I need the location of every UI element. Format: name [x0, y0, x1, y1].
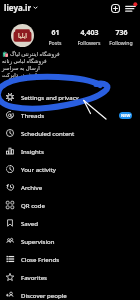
staticText: Settings and privacy	[21, 93, 79, 101]
staticText: Close Friends	[21, 255, 60, 263]
button[interactable]: QR code	[0, 196, 140, 214]
button[interactable]: 736	[104, 28, 138, 46]
staticText: Discover people	[21, 291, 67, 299]
button[interactable]: 4,403	[72, 28, 106, 46]
button[interactable]: Discover people	[0, 286, 140, 300]
staticText: Saved	[21, 219, 39, 227]
staticText: Favorites	[21, 273, 48, 281]
button[interactable]: Archive	[0, 178, 140, 196]
button[interactable]: Your activity	[0, 160, 140, 178]
staticText: Posts	[48, 39, 62, 46]
staticText: QR code	[21, 201, 45, 209]
button[interactable]: New post	[108, 1, 122, 15]
button[interactable]: Close Friends	[0, 250, 140, 268]
staticText: Insights	[21, 147, 44, 155]
staticText: Archive	[21, 183, 43, 191]
staticText: Scheduled content	[21, 129, 75, 137]
button[interactable]: Threads	[0, 106, 140, 124]
staticText: سفارش در دایرکت	[2, 71, 45, 78]
staticText: Followers	[77, 39, 101, 46]
button[interactable]: Supervision	[0, 232, 140, 250]
staticText: 🛍 فروشگاه اینترنتی لیاگ	[2, 50, 60, 57]
button[interactable]: Settings and privacy	[0, 88, 140, 106]
staticText: 4,403	[80, 28, 99, 38]
staticText: ارسال به سراسر	[2, 64, 40, 71]
button[interactable]: Insights	[0, 142, 140, 160]
button[interactable]: 61	[38, 28, 72, 46]
staticText: Threads	[21, 111, 45, 119]
button[interactable]: Favorites	[0, 268, 140, 286]
staticText: 736	[115, 28, 128, 38]
button[interactable]: Menu	[123, 1, 137, 15]
staticText: Supervision	[21, 237, 55, 245]
button[interactable]: Saved	[0, 214, 140, 232]
staticText: NEW	[121, 113, 131, 118]
staticText: 61	[51, 28, 60, 38]
button[interactable]: Scheduled content	[0, 124, 140, 142]
staticText: Your activity	[21, 165, 56, 173]
staticText: lieya.ir	[4, 2, 31, 13]
staticText: Following	[109, 39, 133, 46]
staticText: فروشگاه لباس زنانه	[2, 57, 47, 64]
staticText: ایلیا	[18, 32, 27, 39]
button[interactable]: ایلیا	[11, 24, 34, 47]
button[interactable]: lieya.ir	[3, 0, 39, 15]
